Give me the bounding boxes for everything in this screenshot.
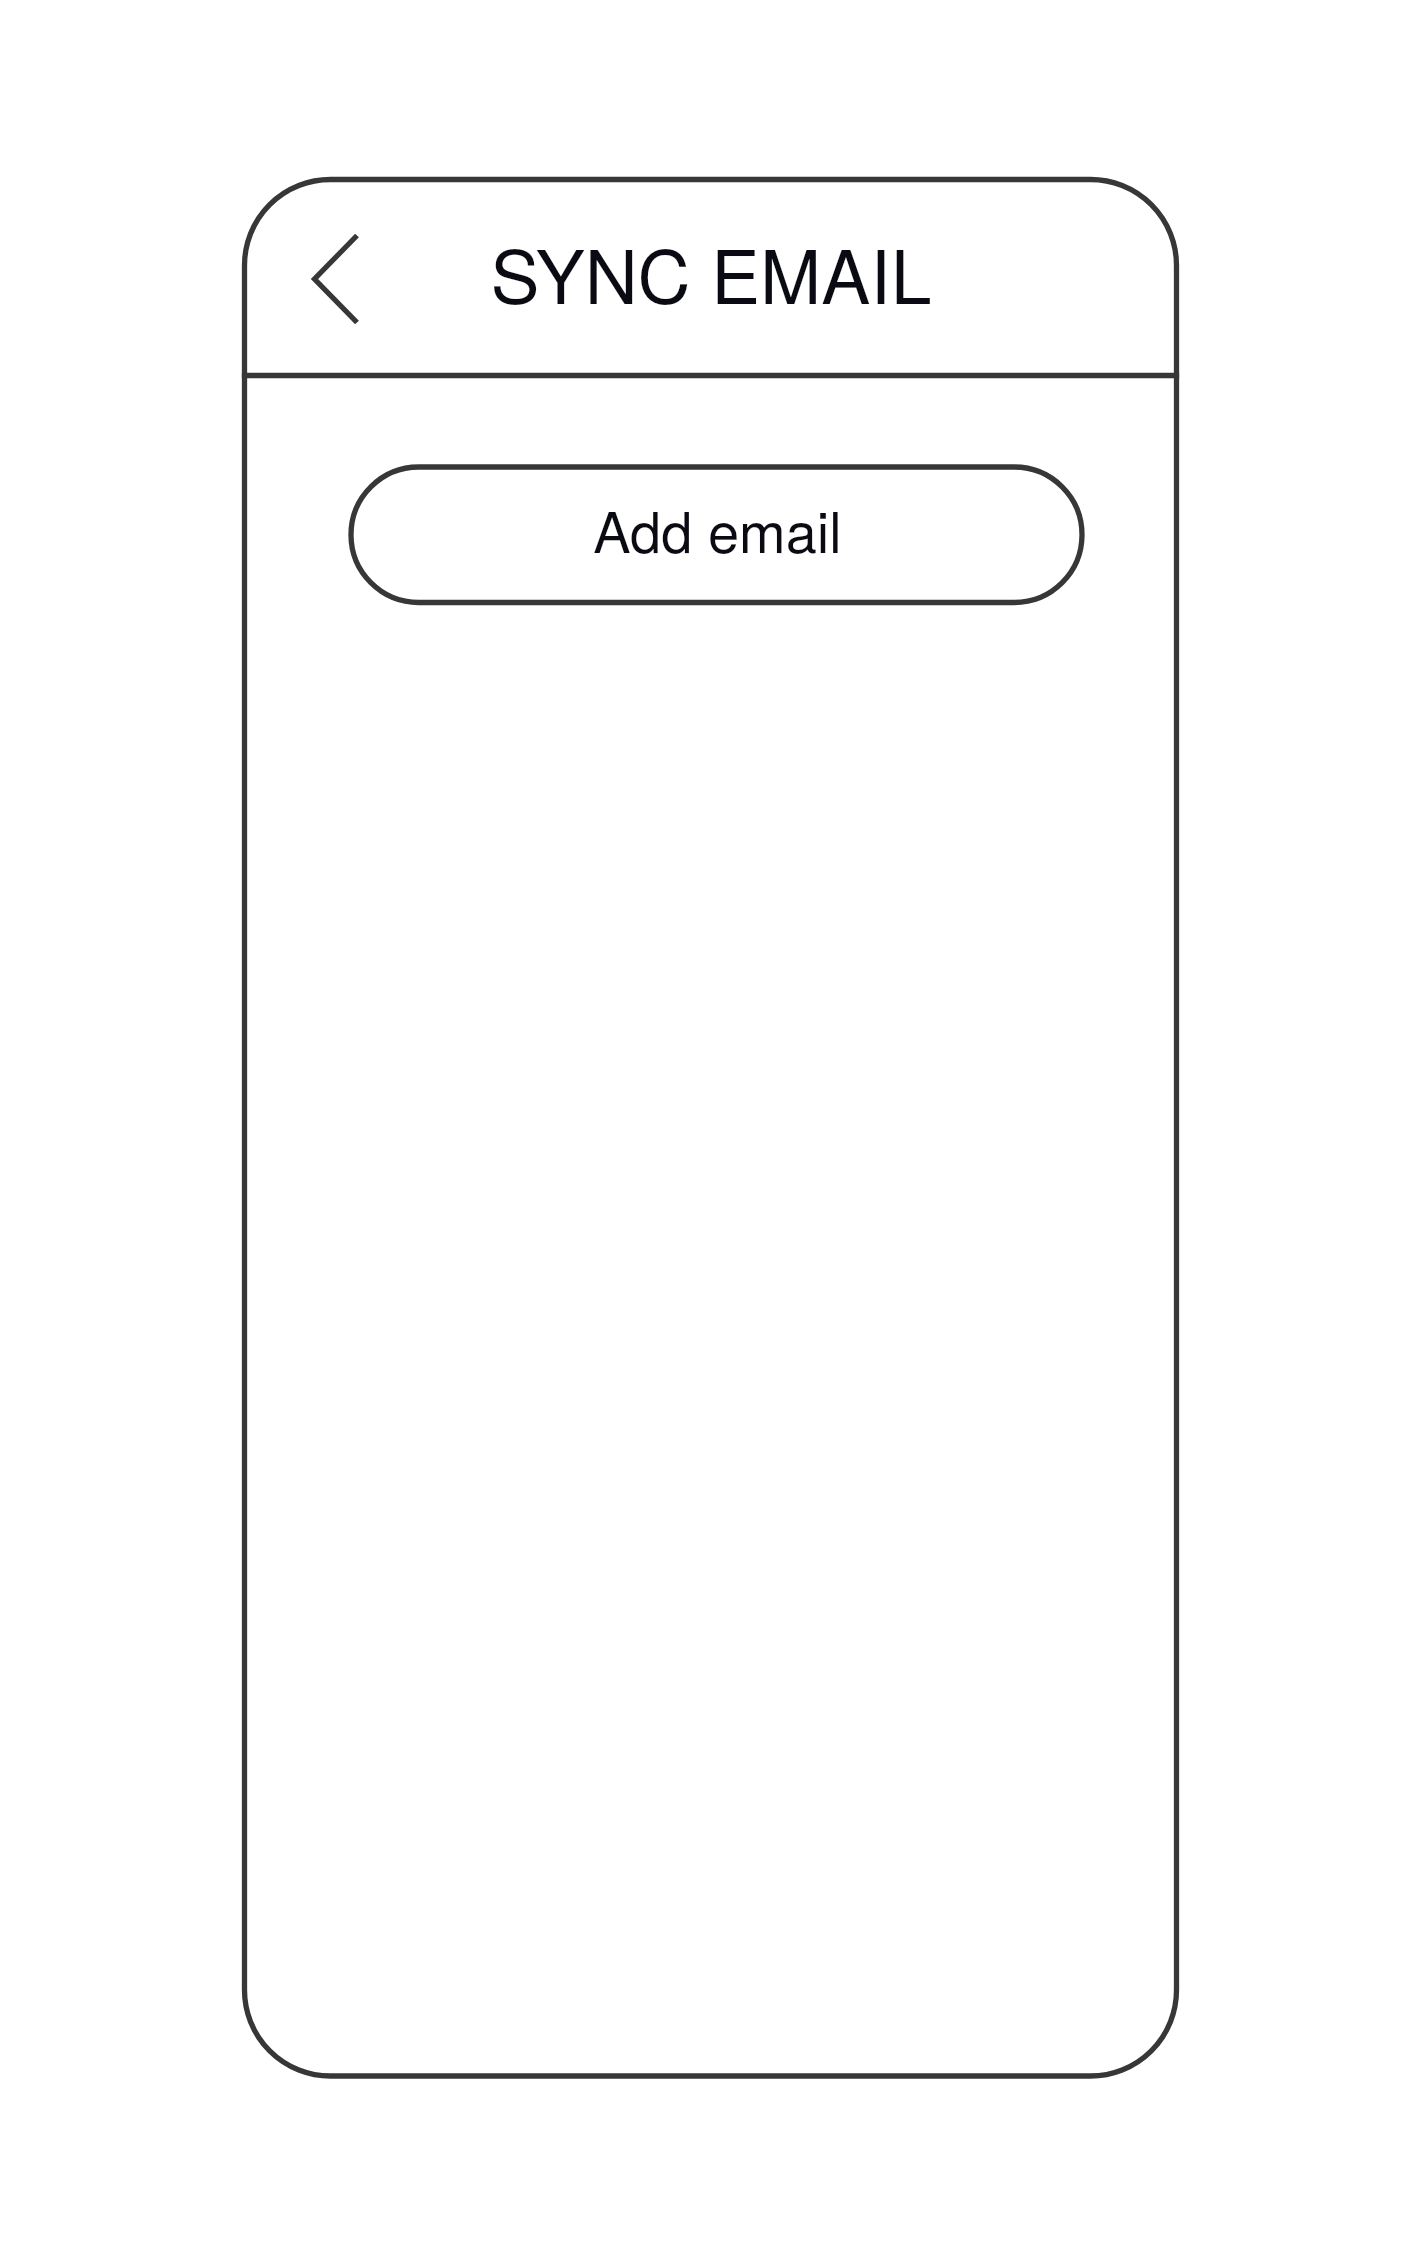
staticText: Add email	[593, 489, 842, 569]
button[interactable]: Back	[287, 212, 422, 347]
staticText: SYNC EMAIL	[490, 220, 932, 325]
button[interactable]: Add email	[351, 467, 1082, 603]
